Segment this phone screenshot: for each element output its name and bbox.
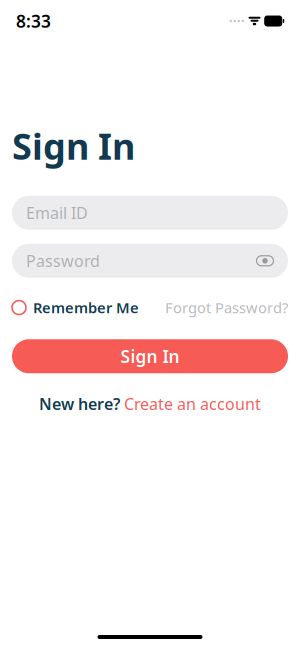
- button[interactable]: Remember Me: [12, 294, 139, 321]
- staticText: Email ID: [26, 202, 88, 223]
- staticText: Password: [26, 250, 100, 271]
- button[interactable]: New here?: [0, 389, 300, 418]
- staticText: Create an account: [124, 393, 261, 414]
- staticText: Remember Me: [33, 298, 139, 317]
- staticText: Sign In: [120, 345, 179, 368]
- staticText: 8:33: [16, 9, 51, 32]
- staticText: Forgot Password?: [165, 298, 288, 317]
- button[interactable]: Sign In: [12, 339, 288, 373]
- staticText: Sign In: [12, 122, 135, 170]
- button[interactable]: Forgot Password?: [165, 294, 288, 321]
- staticText: New here?: [39, 393, 120, 414]
- button[interactable]: Show password: [256, 252, 274, 270]
